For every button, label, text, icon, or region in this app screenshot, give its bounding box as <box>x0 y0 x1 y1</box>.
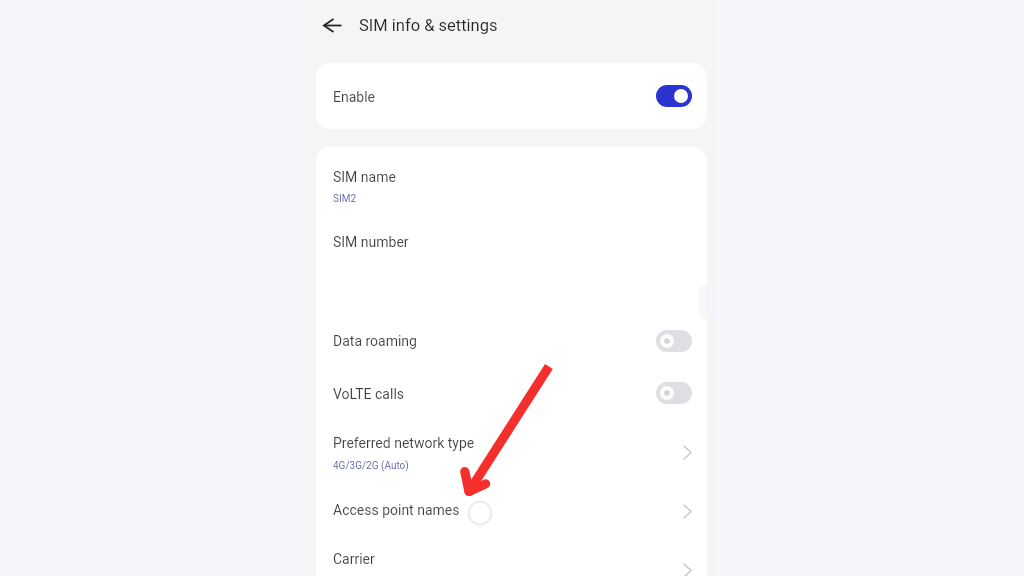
staticText: Carrier <box>333 551 375 567</box>
staticText: SIM name <box>333 169 396 185</box>
button[interactable]: Switch on <box>656 85 692 107</box>
button[interactable]: Switch off <box>656 382 692 404</box>
button[interactable]: SIM name <box>316 160 707 208</box>
staticText: VoLTE calls <box>333 386 405 402</box>
button[interactable]: Switch off <box>656 330 692 352</box>
button[interactable]: Enable <box>316 63 707 129</box>
button[interactable]: SIM number <box>316 225 707 259</box>
button[interactable]: Data roaming <box>316 319 707 369</box>
staticText: SIM info & settings <box>359 16 498 35</box>
button[interactable]: Carrier <box>316 537 707 576</box>
button[interactable]: Back <box>315 8 350 43</box>
staticText: SIM2 <box>333 193 357 205</box>
staticText: SIM number <box>333 234 409 250</box>
staticText: 4G/3G/2G (Auto) <box>333 460 409 472</box>
button[interactable]: Access point names <box>316 488 707 534</box>
button[interactable]: Preferred network type <box>316 421 707 477</box>
staticText: Data roaming <box>333 333 417 349</box>
staticText: Preferred network type <box>333 435 475 451</box>
staticText: Access point names <box>333 502 460 518</box>
staticText: Enable <box>333 89 375 105</box>
button[interactable]: VoLTE calls <box>316 372 707 422</box>
